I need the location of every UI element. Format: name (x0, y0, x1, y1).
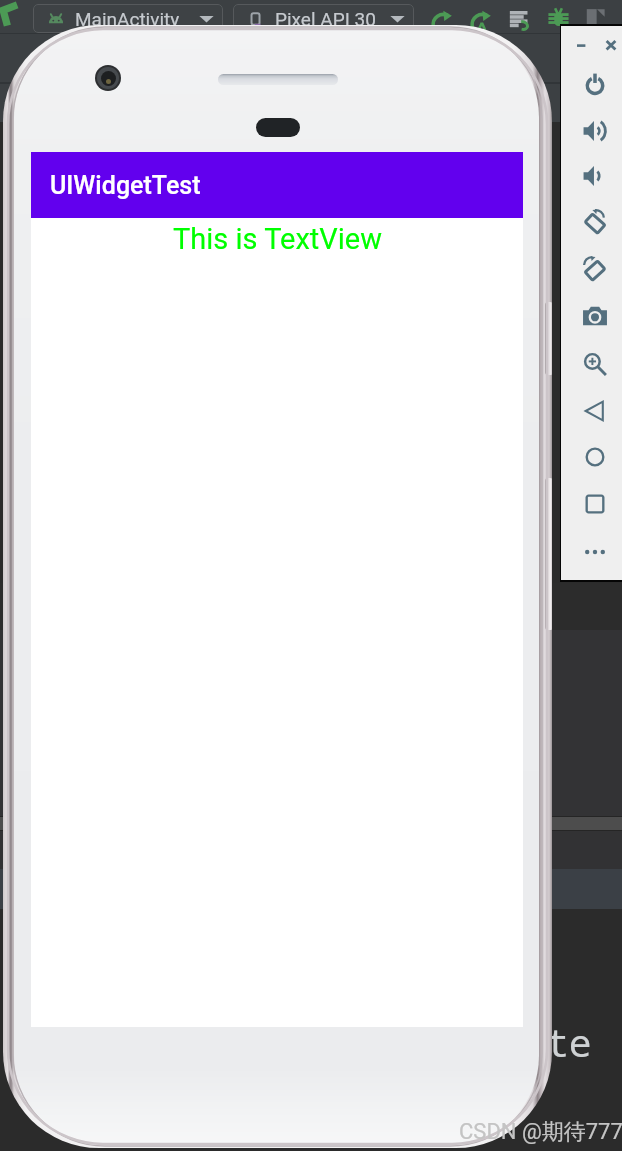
button[interactable]: Logcat (509, 9, 530, 30)
button[interactable]: Take screenshot (577, 298, 613, 334)
button[interactable]: More (577, 534, 613, 570)
staticText: Pixel API 30 (275, 8, 376, 30)
button[interactable]: Debug (548, 7, 569, 28)
button[interactable]: Back (577, 393, 613, 429)
staticText: CSDN @期待777 (459, 1118, 622, 1146)
button[interactable]: UIWidgetTest (31, 152, 523, 218)
staticText: te (546, 1016, 592, 1068)
button[interactable]: Pixel API 30 (233, 4, 414, 33)
staticText: MainActivity (75, 8, 180, 30)
button[interactable]: Power (577, 66, 613, 102)
button[interactable]: Minimize (571, 35, 591, 55)
staticText: UIWidgetTest (50, 171, 201, 200)
button[interactable]: Zoom (577, 346, 613, 382)
button[interactable]: Stop (586, 8, 605, 27)
button[interactable]: Overview (577, 486, 613, 522)
button[interactable]: Back (0, 1, 25, 29)
button[interactable]: Home (577, 439, 613, 475)
button[interactable]: Rotate right (577, 251, 613, 287)
button[interactable]: Volume up (577, 113, 613, 149)
button[interactable]: Close (601, 35, 621, 55)
staticText: This is TextView (173, 222, 382, 256)
button[interactable]: Rerun (430, 8, 453, 31)
button[interactable]: Rerun tests (469, 8, 492, 31)
button[interactable]: Volume down (577, 158, 613, 194)
button[interactable]: Rotate left (577, 204, 613, 240)
button[interactable]: MainActivity (33, 4, 223, 33)
